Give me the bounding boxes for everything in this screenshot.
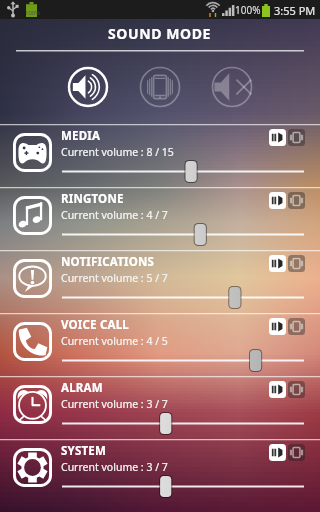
button[interactable]: VOICE CALL	[0, 313, 320, 376]
staticText: Current volume : 4 / 7	[61, 208, 168, 222]
staticText: Current volume : 4 / 5	[61, 334, 168, 348]
staticText: Current volume : 3 / 7	[61, 397, 168, 411]
button[interactable]: Silent mode	[210, 65, 254, 109]
staticText: ALRAM	[61, 380, 103, 396]
button[interactable]: Vibrate on	[288, 129, 305, 146]
button[interactable]: Vibrate on	[288, 255, 305, 272]
staticText: 100%	[235, 3, 261, 17]
button[interactable]: SYSTEM	[0, 439, 320, 502]
staticText: RINGTONE	[61, 191, 124, 207]
staticText: Current volume : 3 / 7	[61, 460, 168, 474]
button[interactable]: Vibrate on	[288, 381, 305, 398]
button[interactable]: ALRAM	[0, 376, 320, 439]
button[interactable]: Vibrate on	[288, 192, 305, 209]
button[interactable]: Vibrate on	[288, 318, 305, 335]
button[interactable]: Sound on	[269, 381, 286, 398]
button[interactable]: Sound on	[269, 318, 286, 335]
staticText: Current volume : 8 / 15	[61, 145, 174, 159]
button[interactable]: Sound on	[269, 129, 286, 146]
staticText: NOTIFICATIONS	[61, 254, 155, 270]
button[interactable]: Vibrate mode	[138, 65, 182, 109]
button[interactable]: Sound mode	[66, 65, 110, 109]
button[interactable]: Vibrate on	[288, 444, 305, 461]
staticText: 3:55 PM	[274, 3, 316, 18]
staticText: 100%	[25, 9, 41, 17]
button[interactable]: Sound on	[269, 444, 286, 461]
staticText: Current volume : 5 / 7	[61, 271, 168, 285]
button[interactable]: RINGTONE	[0, 187, 320, 250]
staticText: SYSTEM	[61, 443, 106, 459]
staticText: VOICE CALL	[61, 317, 129, 333]
button[interactable]: NOTIFICATIONS	[0, 250, 320, 313]
button[interactable]: Sound on	[269, 192, 286, 209]
button[interactable]: MEDIA	[0, 124, 320, 187]
staticText: SOUND MODE	[108, 24, 212, 43]
button[interactable]: Sound on	[269, 255, 286, 272]
staticText: MEDIA	[61, 128, 101, 144]
